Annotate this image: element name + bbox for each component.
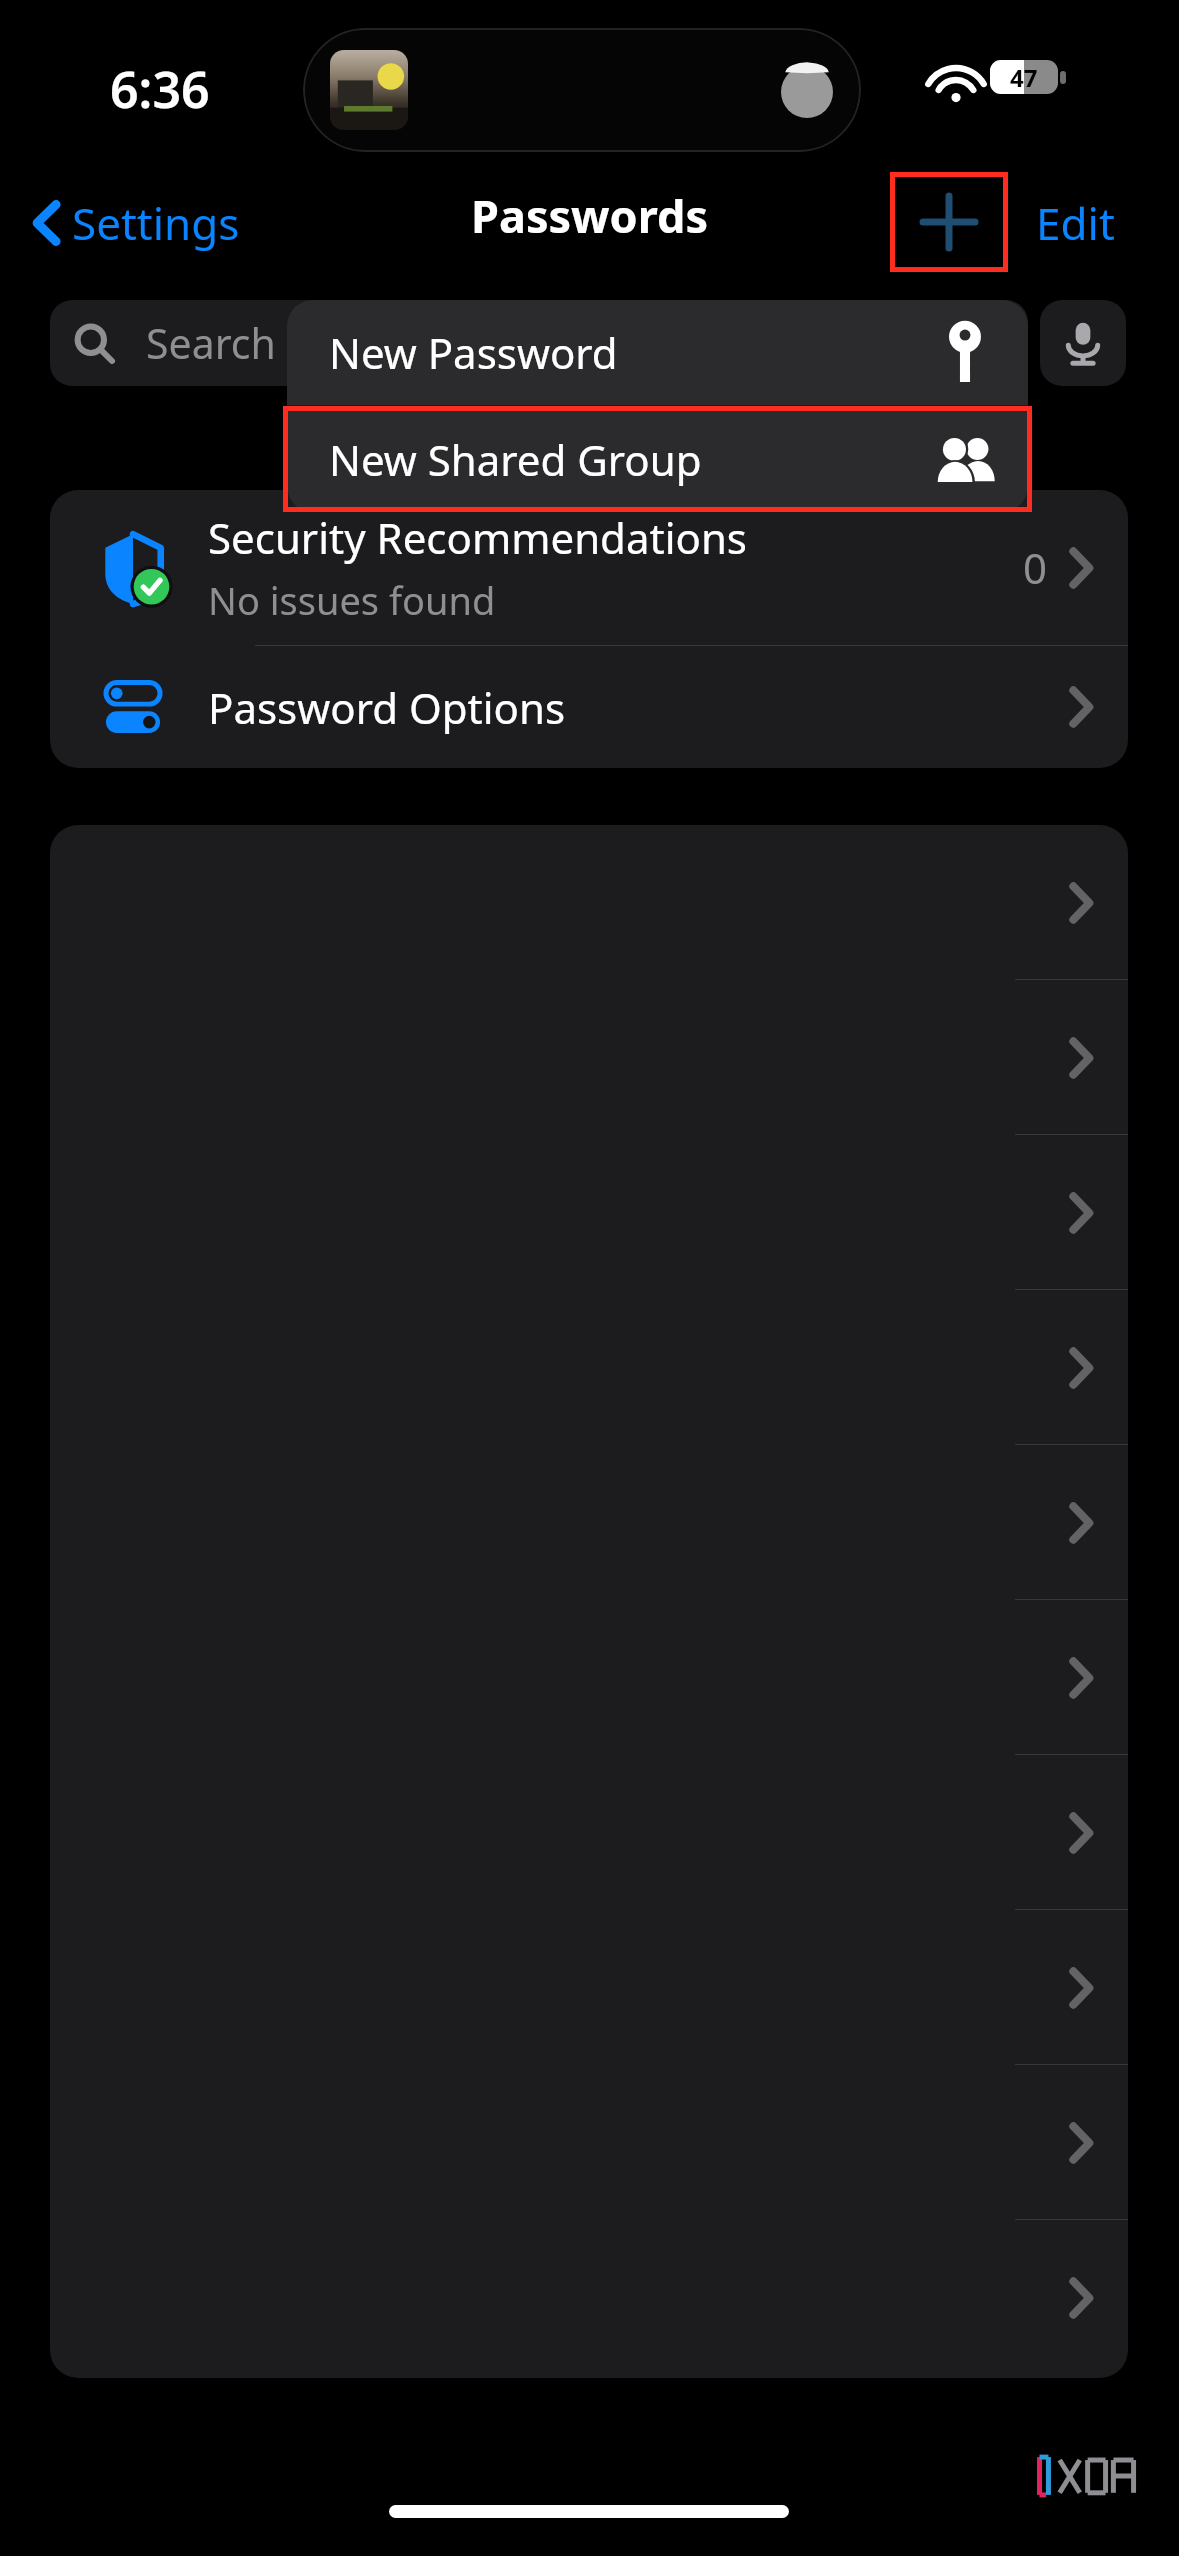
- staticText: 6:36: [110, 55, 210, 123]
- button[interactable]: Settings: [22, 178, 252, 268]
- staticText: Edit: [1036, 193, 1115, 253]
- staticText: Security Recommendations: [208, 509, 747, 566]
- button[interactable]: Password entry: [50, 1290, 1128, 1445]
- staticText: 47: [1010, 61, 1038, 94]
- staticText: 0: [1023, 539, 1048, 596]
- button[interactable]: Security Recommendations: [50, 490, 1128, 645]
- staticText: New Shared Group: [329, 431, 934, 488]
- staticText: Password Options: [208, 679, 1070, 736]
- button[interactable]: Password Options: [50, 646, 1128, 768]
- button[interactable]: Search: [50, 300, 1028, 386]
- button[interactable]: Password entry: [50, 1910, 1128, 2065]
- button[interactable]: Password entry: [50, 980, 1128, 1135]
- button[interactable]: Password entry: [50, 1445, 1128, 1600]
- button[interactable]: Password entry: [50, 1600, 1128, 1755]
- staticText: Settings: [72, 193, 240, 253]
- button[interactable]: Voice search: [1040, 300, 1126, 386]
- button[interactable]: New Password: [287, 300, 1028, 405]
- button[interactable]: Password entry: [50, 2065, 1128, 2220]
- button[interactable]: Password entry: [50, 825, 1128, 980]
- staticText: Search: [146, 315, 276, 371]
- staticText: Passwords: [471, 185, 708, 246]
- button[interactable]: Password entry: [50, 1755, 1128, 1910]
- staticText: No issues found: [208, 574, 496, 626]
- button[interactable]: Edit: [1030, 178, 1121, 268]
- button[interactable]: Add: [890, 172, 1008, 272]
- button[interactable]: Password entry: [50, 2220, 1128, 2375]
- staticText: New Password: [329, 324, 944, 381]
- button[interactable]: New Shared Group: [287, 407, 1028, 512]
- button[interactable]: Password entry: [50, 1135, 1128, 1290]
